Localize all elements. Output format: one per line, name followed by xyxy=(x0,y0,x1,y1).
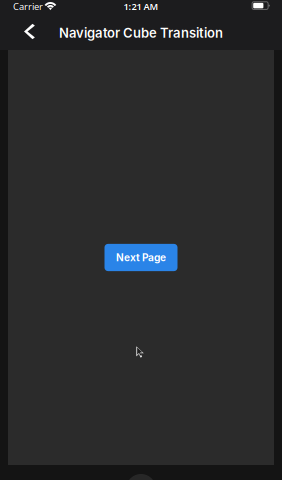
staticText: Navigator Cube Transition xyxy=(59,25,223,41)
staticText: Carrier xyxy=(13,0,43,13)
button[interactable]: Next Page xyxy=(104,244,177,271)
button[interactable]: Back xyxy=(15,15,45,47)
staticText: 1:21 AM xyxy=(123,0,158,13)
staticText: Next Page xyxy=(116,251,166,264)
